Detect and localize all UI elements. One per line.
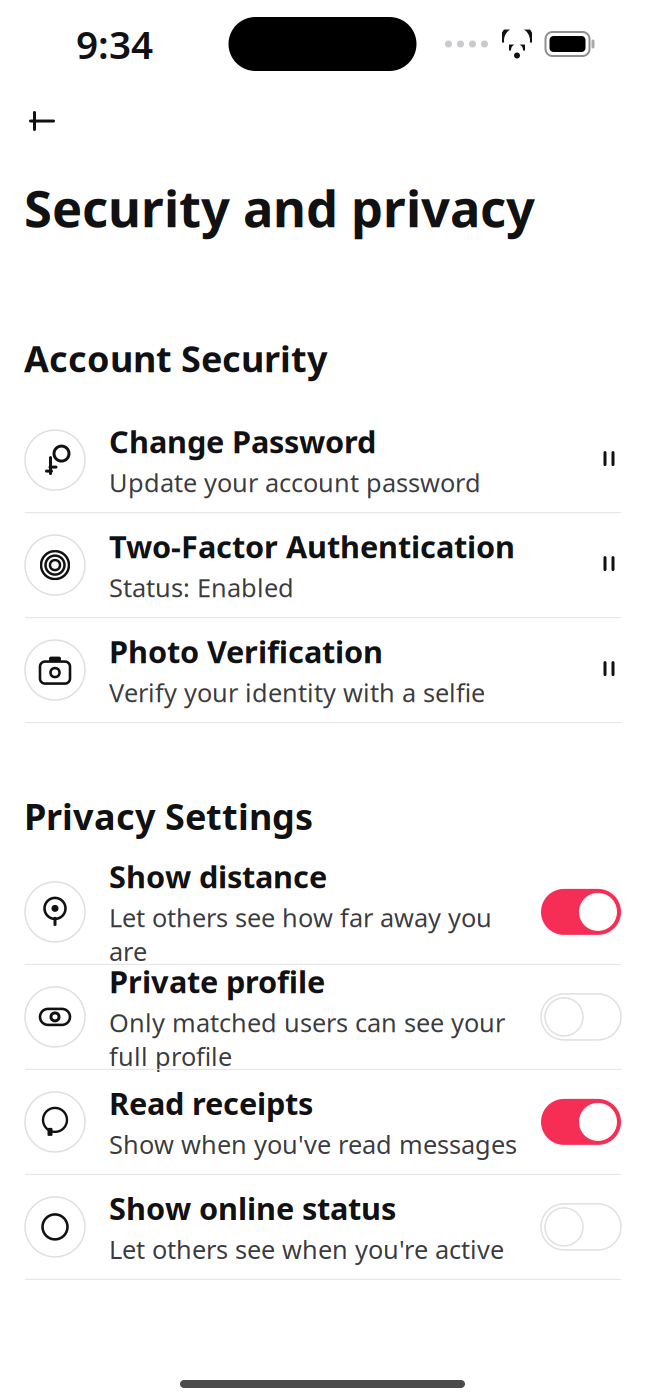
staticText: Two-Factor Authentication — [109, 526, 515, 567]
staticText: Only matched users can see your full pro… — [109, 1006, 505, 1073]
button[interactable]: Back — [14, 96, 70, 146]
button[interactable]: Read receipts — [0, 1070, 645, 1175]
button[interactable]: Two-Factor Authentication — [0, 513, 645, 618]
staticText: Let others see how far away you are — [109, 901, 492, 968]
staticText: Show online status — [109, 1188, 396, 1228]
button[interactable]: Show online status — [0, 1175, 645, 1280]
staticText: Status: Enabled — [109, 571, 294, 604]
button[interactable]: Change Password — [0, 408, 645, 513]
staticText: Show distance — [109, 856, 327, 897]
staticText: Verify your identity with a selfie — [109, 676, 485, 709]
staticText: Update your account password — [109, 466, 481, 499]
staticText: Security and privacy — [24, 174, 535, 241]
staticText: Account Security — [24, 334, 328, 382]
staticText: Privacy Settings — [24, 792, 313, 840]
staticText: 9:34 — [76, 18, 153, 70]
button[interactable]: Show distance — [0, 860, 645, 965]
staticText: Change Password — [109, 421, 376, 462]
staticText: Read receipts — [109, 1083, 313, 1123]
staticText: Show when you've read messages — [109, 1127, 517, 1161]
staticText: Photo Verification — [109, 631, 383, 672]
staticText: Private profile — [109, 961, 325, 1002]
staticText: Let others see when you're active — [109, 1232, 504, 1266]
button[interactable]: Private profile — [0, 965, 645, 1070]
button[interactable]: Photo Verification — [0, 618, 645, 723]
